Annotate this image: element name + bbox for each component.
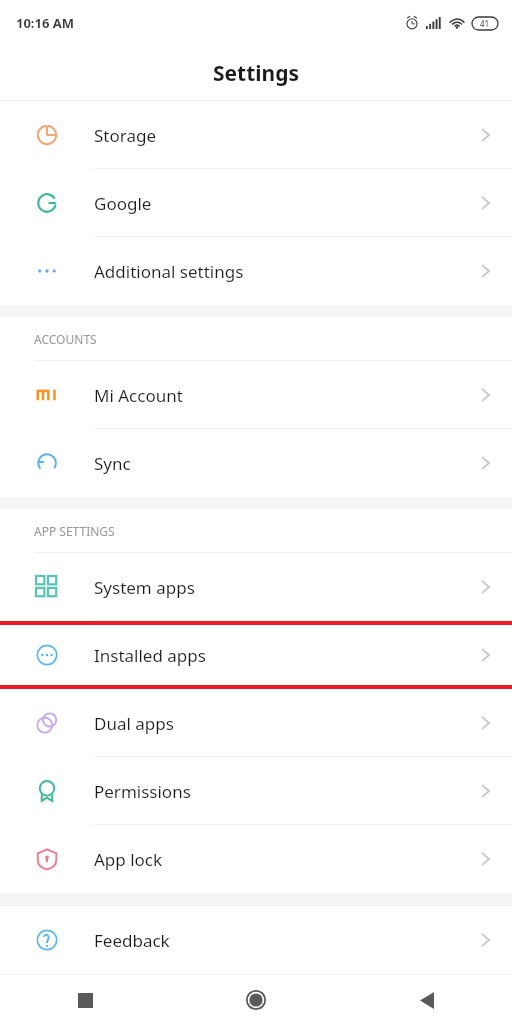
staticText: Mi Account	[94, 384, 481, 407]
button[interactable]: Google	[0, 169, 512, 237]
staticText: Installed apps	[94, 644, 481, 667]
button[interactable]: Sync	[0, 429, 512, 497]
button[interactable]: Recent apps	[63, 978, 107, 1022]
staticText: Additional settings	[94, 260, 481, 283]
staticText: App lock	[94, 848, 481, 871]
staticText: Feedback	[94, 929, 481, 952]
button[interactable]: Storage	[0, 101, 512, 169]
staticText: Google	[94, 192, 481, 215]
button[interactable]: Back	[405, 978, 449, 1022]
staticText: ACCOUNTS	[34, 331, 97, 347]
staticText: Permissions	[94, 780, 481, 803]
button[interactable]: Feedback	[0, 906, 512, 974]
button[interactable]: Permissions	[0, 757, 512, 825]
staticText: Storage	[94, 124, 481, 147]
staticText: Dual apps	[94, 712, 481, 735]
button[interactable]: System apps	[0, 553, 512, 621]
staticText: 41	[480, 18, 490, 29]
button[interactable]: Dual apps	[0, 689, 512, 757]
staticText: 10:16 AM	[16, 14, 75, 32]
staticText: Sync	[94, 452, 481, 475]
button[interactable]: Home	[234, 978, 278, 1022]
button[interactable]: App lock	[0, 825, 512, 893]
button[interactable]: Installed apps	[0, 625, 512, 685]
button[interactable]: Additional settings	[0, 237, 512, 305]
staticText: System apps	[94, 576, 481, 599]
staticText: APP SETTINGS	[34, 523, 115, 539]
button[interactable]: Mi Account	[0, 361, 512, 429]
staticText: Settings	[213, 59, 300, 88]
